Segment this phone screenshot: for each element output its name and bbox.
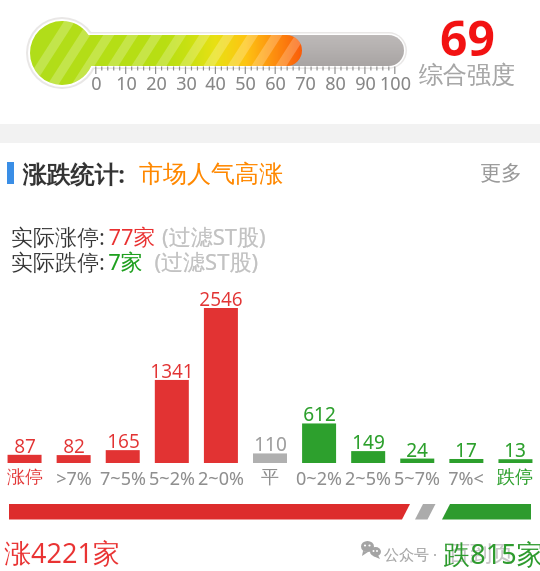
button[interactable]: >7% [47,466,101,491]
staticText: (过滤ST股) [143,246,258,276]
staticText: 87 [14,433,36,459]
staticText: 82 [63,433,85,459]
staticText: 涨4221家 [4,534,120,571]
staticText: 实际跌停: [8,246,108,276]
staticText: 0 [91,71,102,96]
staticText: 80 [325,71,346,96]
staticText: (过滤ST股) [156,221,266,251]
staticText: 24 [406,437,428,463]
staticText: 612 [303,401,336,427]
staticText: 5~2% [149,466,195,491]
button[interactable]: 7%< [439,466,493,491]
button[interactable]: 涨停 [0,466,52,489]
staticText: 7~5% [100,466,146,491]
staticText: 跌停 [497,466,533,489]
staticText: 110 [254,431,287,457]
staticText: 2546 [199,286,243,312]
button[interactable]: 涨4221家 [4,534,120,571]
staticText: 2~0% [198,466,244,491]
staticText: 13 [504,437,526,463]
staticText: 5~7% [394,466,440,491]
button[interactable]: 69 [417,5,517,70]
staticText: 17 [455,437,477,463]
button[interactable]: 5~7% [390,466,444,491]
staticText: 30 [176,71,197,96]
staticText: 40 [205,71,226,96]
button[interactable]: 5~2% [145,466,199,491]
staticText: 综合强度 [419,60,515,90]
staticText: 69 [440,5,495,70]
button[interactable]: 2~5% [341,466,395,491]
button[interactable]: 平 [243,466,297,489]
staticText: 跌815家 [443,535,540,571]
staticText: 70 [295,71,316,96]
staticText: 0~2% [296,466,342,491]
staticText: 平 [261,466,279,489]
staticText: 涨跌统计: [22,157,125,190]
button[interactable]: 涨跌统计: [22,157,283,190]
button[interactable]: 跌815家 [443,535,540,571]
button[interactable]: 0~2% [292,466,346,491]
staticText: 165 [107,428,140,454]
staticText: 7家 [108,246,143,276]
button[interactable]: 7~5% [96,466,150,491]
staticText: >7% [56,466,92,491]
staticText: 涨停 [7,466,43,489]
staticText: 60 [265,71,286,96]
staticText: 百到页 [448,540,514,568]
staticText: 149 [352,429,385,455]
button[interactable]: 更多 [480,160,522,186]
staticText: 7%< [448,466,484,491]
staticText: 10 [116,71,137,96]
button[interactable]: 跌停 [488,466,540,489]
staticText: 1341 [150,358,194,384]
staticText: 20 [146,71,167,96]
staticText: 100 [380,71,411,96]
staticText: 实际涨停: [8,221,108,251]
staticText: 50 [235,71,256,96]
staticText: 77家 [108,221,156,251]
staticText: 市场人气高涨 [139,159,283,189]
staticText: 2~5% [345,466,391,491]
staticText: 90 [355,71,376,96]
staticText: 公众号 · [384,544,437,564]
staticText: 更多 [480,160,522,186]
button[interactable]: 2~0% [194,466,248,491]
